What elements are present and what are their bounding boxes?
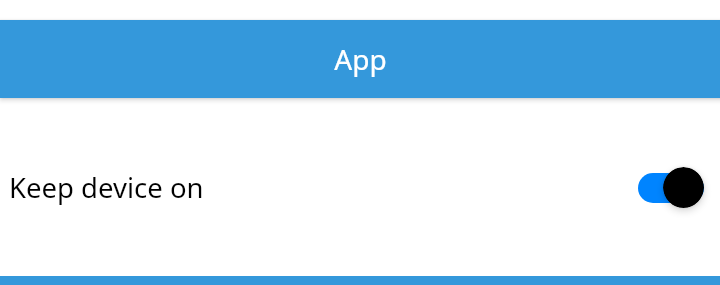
button[interactable]: Keep device on <box>0 150 720 225</box>
button[interactable]: Keep device on toggle <box>638 166 704 210</box>
staticText: App <box>334 40 387 78</box>
staticText: Keep device on <box>9 169 204 206</box>
